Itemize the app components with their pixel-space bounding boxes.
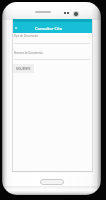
- button[interactable]: Back: [12, 22, 20, 33]
- staticText: SIGUIENTE: [16, 67, 31, 71]
- staticText: Consultar Cita: [35, 26, 63, 31]
- button[interactable]: SIGUIENTE: [13, 64, 34, 73]
- staticText: Tipo de Documento: [14, 34, 38, 38]
- staticText: Numero de Documento: [14, 51, 43, 55]
